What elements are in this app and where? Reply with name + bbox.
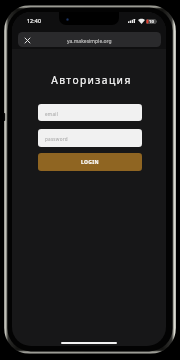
staticText: password — [45, 136, 68, 142]
staticText: 12:40 — [27, 17, 42, 24]
staticText: 10 — [149, 19, 154, 24]
staticText: Авторизация — [51, 73, 132, 87]
button[interactable]: LOGIN — [38, 153, 142, 171]
button[interactable]: Close tab — [18, 32, 161, 47]
staticText: email — [45, 111, 59, 117]
staticText: ya.makesimple.org — [67, 38, 112, 45]
staticText: LOGIN — [81, 159, 99, 166]
button[interactable]: Close tab — [20, 33, 34, 47]
button[interactable]: password — [38, 129, 142, 147]
button[interactable]: email — [38, 104, 142, 121]
